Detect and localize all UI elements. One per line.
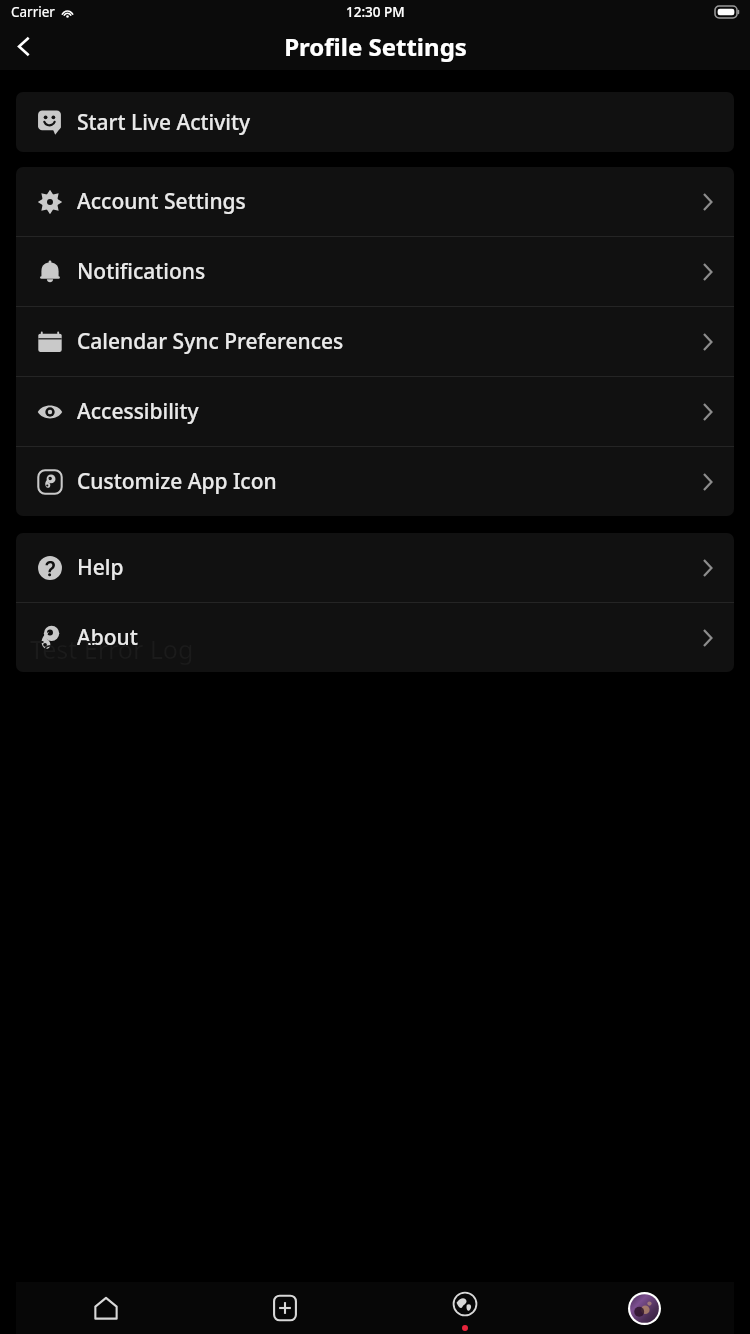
button[interactable]: Home bbox=[75, 1284, 137, 1332]
button[interactable]: Start Live Activity bbox=[16, 92, 734, 152]
button[interactable]: Account Settings bbox=[16, 167, 734, 236]
staticText: About bbox=[77, 623, 138, 652]
button[interactable]: Customize App Icon bbox=[16, 447, 734, 516]
staticText: Start Live Activity bbox=[77, 108, 251, 137]
staticText: Customize App Icon bbox=[77, 467, 277, 496]
staticText: Carrier bbox=[11, 3, 55, 21]
button[interactable]: About bbox=[16, 603, 734, 672]
button[interactable]: Notifications bbox=[16, 237, 734, 306]
staticText: Account Settings bbox=[77, 187, 246, 216]
button[interactable]: Accessibility bbox=[16, 377, 734, 446]
button[interactable]: Calendar Sync Preferences bbox=[16, 307, 734, 376]
button[interactable]: Help bbox=[16, 533, 734, 602]
staticText: 12:30 PM bbox=[346, 3, 405, 21]
staticText: Profile Settings bbox=[284, 30, 467, 63]
button[interactable]: Create bbox=[254, 1284, 316, 1332]
button[interactable]: Profile bbox=[613, 1284, 675, 1332]
staticText: Help bbox=[77, 553, 124, 582]
staticText: Calendar Sync Preferences bbox=[77, 327, 344, 356]
staticText: Accessibility bbox=[77, 397, 199, 426]
button[interactable]: Back bbox=[0, 23, 48, 70]
staticText: Notifications bbox=[77, 257, 206, 286]
staticText: Test Error Log bbox=[30, 632, 194, 666]
button[interactable]: Explore bbox=[434, 1284, 496, 1332]
